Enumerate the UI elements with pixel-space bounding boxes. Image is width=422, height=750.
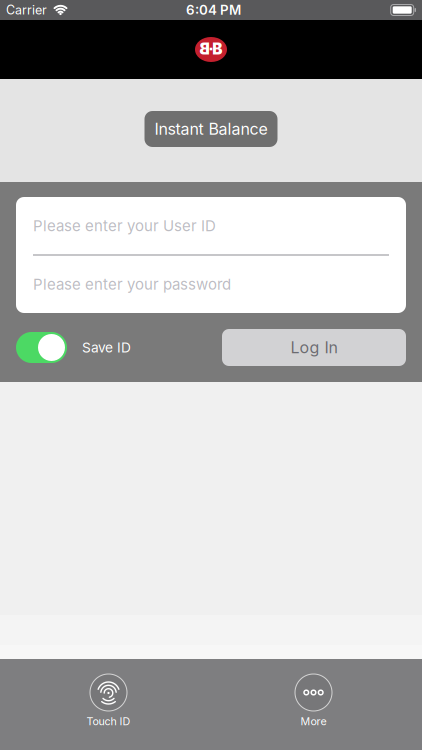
staticText: Please enter your password bbox=[33, 275, 231, 293]
staticText: Touch ID bbox=[86, 715, 130, 728]
button[interactable]: Instant Balance bbox=[144, 111, 277, 147]
staticText: Carrier bbox=[6, 2, 47, 17]
button[interactable]: Log In bbox=[222, 329, 406, 366]
staticText: Instant Balance bbox=[154, 119, 267, 139]
staticText: Log In bbox=[290, 338, 337, 357]
staticText: B bbox=[212, 40, 222, 58]
button[interactable]: Save ID bbox=[16, 332, 67, 363]
staticText: Save ID bbox=[82, 339, 131, 356]
staticText: B bbox=[200, 40, 210, 58]
staticText: More bbox=[300, 715, 326, 728]
button[interactable]: Please enter your password bbox=[16, 255, 406, 313]
button[interactable]: More bbox=[211, 659, 422, 750]
button[interactable]: Please enter your User ID bbox=[16, 197, 406, 254]
staticText: Please enter your User ID bbox=[33, 217, 216, 235]
staticText: 6:04 PM bbox=[186, 2, 241, 18]
button[interactable]: Touch ID bbox=[0, 659, 211, 750]
